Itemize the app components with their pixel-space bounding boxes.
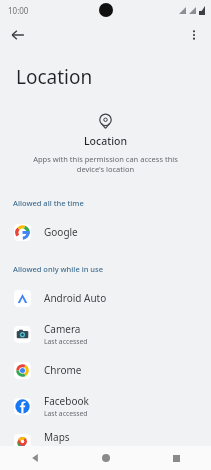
button[interactable]: Chrome	[0, 352, 211, 388]
staticText: Allowed only while in use	[13, 264, 103, 274]
staticText: Apps with this permission can access thi…	[26, 154, 185, 174]
button[interactable]: Camera	[0, 316, 211, 352]
button[interactable]: Back	[6, 23, 30, 47]
button[interactable]: Facebook	[0, 388, 211, 424]
button[interactable]: Google	[0, 214, 211, 250]
staticText: 10:00	[8, 5, 29, 16]
staticText: Maps	[44, 430, 70, 444]
button[interactable]: Maps	[0, 424, 211, 460]
button[interactable]: Home	[71, 446, 141, 470]
button[interactable]: Back	[0, 446, 70, 470]
staticText: Last accessed	[44, 337, 88, 346]
staticText: Android Auto	[44, 291, 107, 305]
staticText: Camera	[44, 322, 81, 336]
button[interactable]: Android Auto	[0, 280, 211, 316]
staticText: Location	[16, 64, 93, 90]
button[interactable]: More options	[182, 23, 206, 47]
staticText: Chrome	[44, 363, 82, 377]
button[interactable]: Recent apps	[141, 446, 211, 470]
staticText: Location	[84, 134, 128, 148]
staticText: Facebook	[44, 394, 89, 408]
staticText: Allowed all the time	[13, 198, 84, 208]
staticText: Google	[44, 225, 78, 239]
staticText: Last accessed	[44, 409, 88, 418]
